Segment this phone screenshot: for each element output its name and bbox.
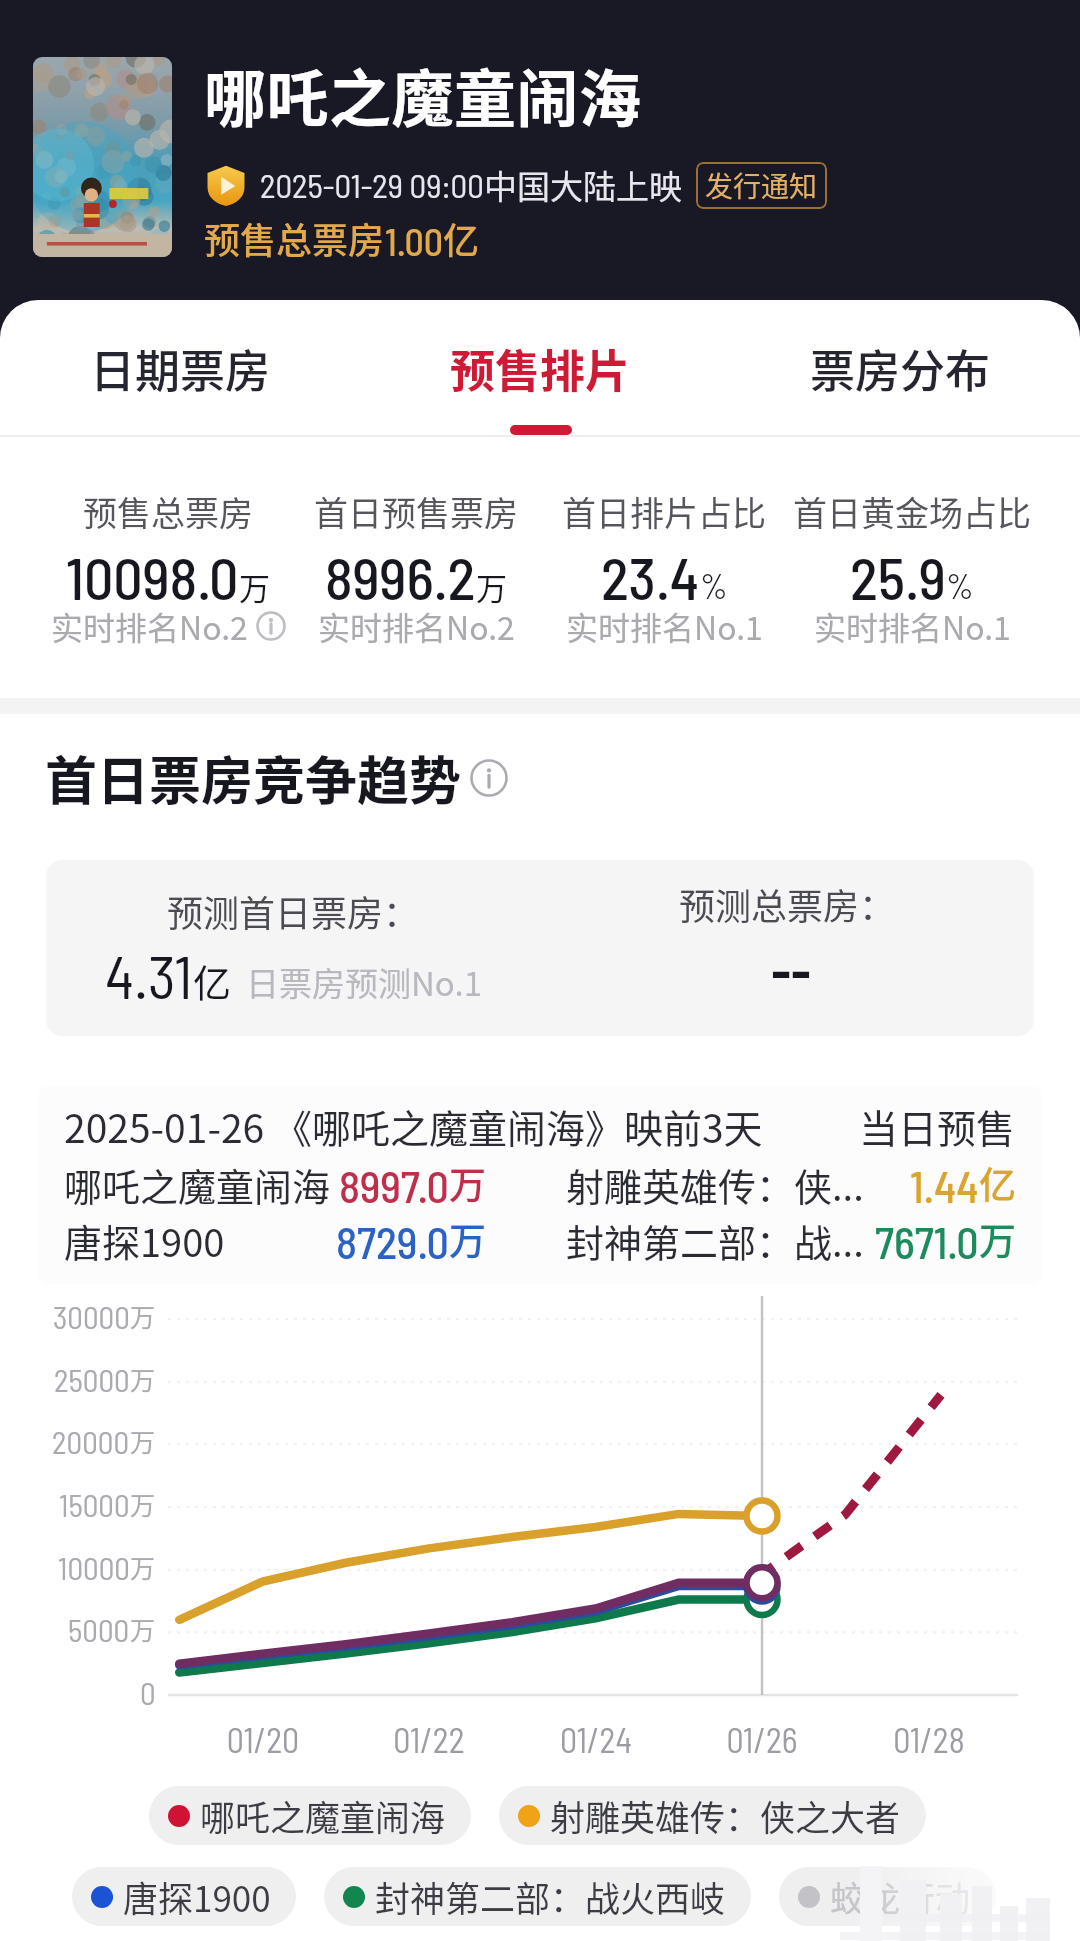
staticText: 预售总票房 xyxy=(204,212,385,264)
staticText: 预测总票房： xyxy=(679,878,896,930)
staticText: 封神第二部：战... xyxy=(566,1213,864,1268)
button[interactable]: 首日预售票房 xyxy=(292,487,540,658)
button[interactable]: 首日排片占比 xyxy=(540,487,788,658)
staticText: 01/20 xyxy=(193,1719,333,1760)
staticText: 实时排名No.2 xyxy=(318,603,515,649)
button[interactable]: 日期票房 xyxy=(0,300,360,435)
staticText: 25000 xyxy=(54,1361,130,1398)
button[interactable]: 蛟龙行动 xyxy=(779,1867,996,1926)
staticText: 亿 xyxy=(193,953,232,1008)
staticText: 哪吒之魔童闹海 xyxy=(200,1790,446,1841)
staticText: 万 xyxy=(130,1611,156,1647)
staticText: 亿 xyxy=(443,212,480,264)
staticText: 预测首日票房： xyxy=(167,885,420,937)
staticText: 8997.0 xyxy=(339,1159,449,1212)
staticText: 射雕英雄传：侠... xyxy=(566,1157,864,1212)
staticText: 万 xyxy=(130,1361,156,1397)
staticText: 实时排名No.2 xyxy=(51,603,248,649)
staticText: 0 xyxy=(140,1674,156,1711)
button[interactable]: 封神第二部：战火西岐 xyxy=(324,1867,751,1926)
button[interactable]: 射雕英雄传：侠之大者 xyxy=(499,1786,926,1845)
staticText: % xyxy=(946,565,974,606)
staticText: 实时排名No.1 xyxy=(814,603,1011,649)
staticText: 01/24 xyxy=(526,1719,666,1760)
staticText: - - xyxy=(770,922,805,1009)
staticText: 万 xyxy=(130,1486,156,1522)
staticText: 唐探1900 xyxy=(123,1871,271,1922)
staticText: 01/28 xyxy=(859,1719,999,1760)
button[interactable]: 预售总票房 xyxy=(44,487,292,658)
staticText: 1.00 xyxy=(385,218,443,264)
button[interactable]: 预售排片 xyxy=(360,300,720,435)
staticText: 射雕英雄传：侠之大者 xyxy=(550,1790,901,1841)
staticText: 万 xyxy=(130,1298,156,1334)
staticText: 万 xyxy=(130,1423,156,1459)
button[interactable]: 预测首日票房： xyxy=(46,860,1034,1036)
staticText: 万 xyxy=(449,1212,486,1266)
staticText: 01/26 xyxy=(692,1719,832,1760)
staticText: 亿 xyxy=(979,1156,1016,1210)
staticText: 15000 xyxy=(59,1486,130,1523)
staticText: 20000 xyxy=(52,1423,130,1460)
staticText: 首日票房竞争趋势 xyxy=(45,740,462,815)
staticText: 哪吒之魔童闹海 xyxy=(204,50,642,140)
staticText: 唐探1900 xyxy=(64,1213,225,1268)
staticText: 8729.0 xyxy=(336,1215,449,1268)
staticText: 票房分布 xyxy=(810,336,991,401)
staticText: 10098.0 xyxy=(66,542,239,612)
button[interactable]: 唐探1900 xyxy=(72,1867,296,1926)
staticText: 实时排名No.1 xyxy=(566,603,763,649)
staticText: 7671.0 xyxy=(875,1215,979,1268)
staticText: 当日预售 xyxy=(859,1098,1016,1154)
staticText: 01/22 xyxy=(359,1719,499,1760)
staticText: 8996.2 xyxy=(325,542,476,612)
button[interactable]: 发行通知 xyxy=(696,162,827,209)
staticText: 万 xyxy=(130,1549,156,1585)
staticText: 万 xyxy=(476,564,507,609)
staticText: 万 xyxy=(449,1156,486,1210)
staticText: 哪吒之魔童闹海 xyxy=(64,1157,331,1212)
staticText: 中国大陆上映 xyxy=(484,161,682,209)
staticText: 23.4 xyxy=(601,542,700,612)
staticText: 万 xyxy=(239,564,270,609)
staticText: 2025-01-29 09:00 xyxy=(260,165,484,205)
staticText: 25.9 xyxy=(850,542,946,612)
staticText: % xyxy=(700,565,728,606)
button[interactable]: 票房分布 xyxy=(720,300,1080,435)
staticText: 2025-01-26 《哪吒之魔童闹海》映前3天 xyxy=(64,1098,763,1154)
staticText: 1.44 xyxy=(910,1159,979,1212)
staticText: 首日黄金场占比 xyxy=(793,487,1031,536)
staticText: 万 xyxy=(979,1212,1016,1266)
staticText: 日期票房 xyxy=(90,336,271,401)
button[interactable]: 趋势说明 xyxy=(470,759,508,797)
staticText: 蛟龙行动 xyxy=(830,1871,971,1922)
button[interactable]: 电影海报 xyxy=(33,57,172,257)
staticText: 日票房预测No.1 xyxy=(246,958,482,1006)
staticText: 5000 xyxy=(68,1611,130,1648)
staticText: 发行通知 xyxy=(705,165,818,206)
staticText: 首日预售票房 xyxy=(314,487,518,536)
button[interactable]: 首日黄金场占比 xyxy=(788,487,1036,658)
staticText: 首日排片占比 xyxy=(562,487,766,536)
staticText: 预售排片 xyxy=(450,336,631,401)
staticText: 30000 xyxy=(53,1298,130,1335)
staticText: 4.31 xyxy=(105,939,193,1011)
staticText: 10000 xyxy=(58,1549,130,1586)
staticText: 预售总票房 xyxy=(83,487,253,536)
button[interactable]: 哪吒之魔童闹海 xyxy=(149,1786,471,1845)
staticText: 封神第二部：战火西岐 xyxy=(375,1871,726,1922)
